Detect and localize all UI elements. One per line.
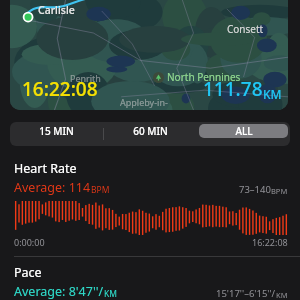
button[interactable]: ALL <box>199 124 288 138</box>
button[interactable]: Carlisle <box>10 0 288 110</box>
staticText: KM <box>263 86 282 102</box>
staticText: BPM <box>91 184 110 196</box>
staticText: Pace <box>14 264 42 281</box>
staticText: 111.78 <box>203 76 263 102</box>
staticText: 73–140 <box>239 183 271 196</box>
staticText: 0:00:00 <box>14 236 45 248</box>
staticText: Heart Rate <box>14 160 77 177</box>
staticText: 16:22:08 <box>252 236 288 248</box>
staticText: Appleby-in- <box>120 96 168 108</box>
button[interactable]: 60 MIN <box>106 124 195 138</box>
staticText: Penrith <box>70 72 101 84</box>
button[interactable]: 15 MIN <box>12 124 101 138</box>
staticText: 60 MIN <box>133 124 168 138</box>
staticText: Average: 114 <box>14 179 91 196</box>
staticText: North Pennines <box>167 70 241 84</box>
staticText: ALL <box>235 124 253 138</box>
staticText: 16:22:08 <box>22 76 98 102</box>
staticText: Consett <box>227 22 264 36</box>
staticText: 15'17''–6'15''/ <box>216 287 276 300</box>
staticText: BPM <box>271 186 288 196</box>
staticText: KM <box>104 288 117 300</box>
staticText: Average: 8'47''/ <box>14 283 104 300</box>
staticText: Carlisle <box>38 3 75 17</box>
staticText: KM <box>276 290 288 300</box>
staticText: 15 MIN <box>39 124 74 138</box>
